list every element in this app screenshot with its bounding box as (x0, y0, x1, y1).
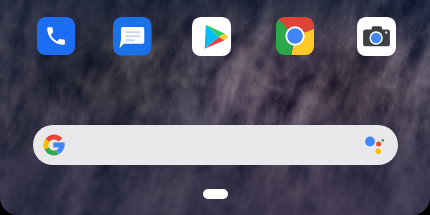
button[interactable]: Camera (357, 17, 396, 56)
button[interactable]: Search with Google (33, 125, 398, 165)
button[interactable]: Play Store (192, 17, 231, 56)
button[interactable]: Chrome (276, 17, 314, 55)
button[interactable]: Home (203, 189, 228, 199)
button[interactable]: Messages (113, 17, 152, 56)
button[interactable]: Phone (37, 17, 75, 55)
